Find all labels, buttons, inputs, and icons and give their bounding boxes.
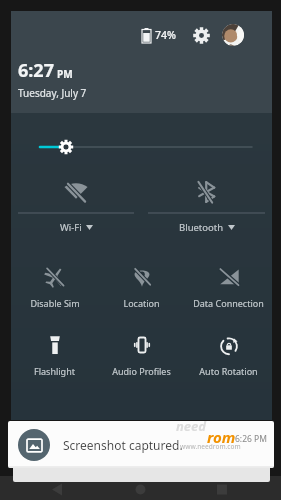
staticText: Audio Profiles [112,365,171,377]
staticText: 6:26 PM [235,433,267,445]
staticText: Screenshot captured. [63,437,183,453]
button[interactable]: Disable Sim [11,261,98,315]
staticText: Location [123,297,160,309]
staticText: Wi-Fi [60,221,82,234]
staticText: Bluetooth [179,221,224,234]
staticText: rom [207,427,236,447]
staticText: Tuesday, July 7 [18,86,87,100]
staticText: need [176,417,207,435]
staticText: Disable Sim [30,297,80,309]
button[interactable]: Settings [190,24,212,46]
button[interactable]: Flashlight [11,329,98,383]
staticText: Flashlight [34,365,75,377]
button[interactable]: Brightness [11,135,272,159]
button[interactable]: Screenshot captured. [8,421,274,468]
staticText: Auto Rotation [199,365,258,377]
button[interactable]: Location [98,261,185,315]
staticText: PM [57,67,73,81]
button[interactable]: User profile [222,24,244,46]
staticText: www.needrom.com [180,442,241,451]
button[interactable]: Data Connection [185,261,272,315]
staticText: 6:27 [18,58,54,83]
button[interactable]: Audio Profiles [98,329,185,383]
staticText: 74% [155,28,176,42]
button[interactable]: Bluetooth [141,179,272,243]
button[interactable]: Auto Rotation [185,329,272,383]
button[interactable]: Wi-Fi [11,179,141,243]
staticText: Data Connection [193,297,264,309]
